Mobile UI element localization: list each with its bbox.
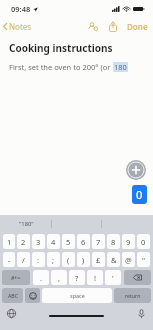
staticText: 6 [81, 237, 86, 247]
staticText: ABC [8, 292, 18, 299]
button[interactable]: & [107, 252, 120, 267]
staticText: 09:48 [11, 4, 31, 14]
staticText: 7 [96, 237, 101, 247]
button[interactable]: , [51, 270, 67, 285]
staticText: return [125, 292, 141, 299]
staticText: / [22, 255, 25, 265]
button[interactable]: Collaborate [86, 20, 99, 33]
button[interactable]: 8 [107, 234, 120, 249]
staticText: Notes [9, 21, 32, 32]
button[interactable]: Emoji [25, 288, 40, 303]
button[interactable]: 2 [17, 234, 30, 249]
button[interactable]: return [114, 288, 151, 303]
button[interactable]: 1 [3, 234, 15, 249]
staticText: : [37, 255, 40, 265]
button[interactable]: Dictate [135, 307, 148, 320]
staticText: " [142, 255, 146, 265]
button[interactable]: ? [69, 270, 85, 285]
button[interactable]: ! [87, 270, 103, 285]
staticText: 2 [21, 237, 26, 247]
button[interactable]: . [33, 270, 49, 285]
staticText: ? [75, 273, 79, 283]
button[interactable]: 5 [62, 234, 75, 249]
staticText: . [40, 273, 43, 283]
button[interactable]: : [32, 252, 45, 267]
staticText: space [70, 292, 85, 299]
button[interactable]: 4 [47, 234, 60, 249]
button[interactable]: 9 [122, 234, 135, 249]
button[interactable]: #+= [2, 270, 30, 285]
staticText: 0 [136, 187, 143, 202]
staticText: , [58, 273, 61, 283]
staticText: & [111, 255, 117, 265]
button[interactable]: 3 [32, 234, 45, 249]
staticText: @ [125, 255, 132, 265]
button[interactable]: Change keyboard [5, 307, 18, 320]
staticText: Cooking instructions [9, 41, 113, 55]
button[interactable]: £ [92, 252, 105, 267]
button[interactable]: ) [77, 252, 90, 267]
button[interactable]: ; [47, 252, 60, 267]
button[interactable]: " [137, 252, 150, 267]
button[interactable]: Add attachment [126, 160, 146, 180]
staticText: 0 [141, 237, 146, 247]
staticText: First, set the oven to 200° (or [9, 62, 113, 72]
button[interactable]: @ [122, 252, 135, 267]
button[interactable]: space [42, 288, 112, 303]
staticText: 3 [36, 237, 41, 247]
button[interactable]: ABC [2, 288, 23, 303]
button[interactable]: 7 [92, 234, 105, 249]
staticText: ' [112, 273, 114, 283]
button[interactable]: / [17, 252, 30, 267]
button[interactable]: Notes [3, 21, 32, 32]
button[interactable]: Done [127, 21, 148, 32]
button[interactable]: "180" [2, 216, 51, 231]
button[interactable]: 6 [77, 234, 90, 249]
staticText: 9 [126, 237, 131, 247]
staticText: #+= [11, 274, 21, 281]
staticText: - [8, 255, 11, 265]
button[interactable]: Backspace [124, 270, 151, 285]
staticText: £ [96, 255, 101, 265]
staticText: ) [82, 255, 85, 265]
staticText: 1 [7, 237, 12, 247]
staticText: ! [94, 273, 97, 283]
staticText: 180 [114, 62, 127, 72]
staticText: 8 [111, 237, 116, 247]
button[interactable]: 0 [137, 234, 150, 249]
button[interactable]: - [3, 252, 15, 267]
staticText: ; [52, 255, 55, 265]
staticText: Done [127, 21, 148, 32]
staticText: 5 [66, 237, 71, 247]
staticText: 4 [51, 237, 56, 247]
staticText: ( [67, 255, 70, 265]
staticText: "180" [19, 220, 34, 228]
button[interactable]: ( [62, 252, 75, 267]
button[interactable]: Share [106, 20, 119, 33]
button[interactable]: ' [105, 270, 121, 285]
